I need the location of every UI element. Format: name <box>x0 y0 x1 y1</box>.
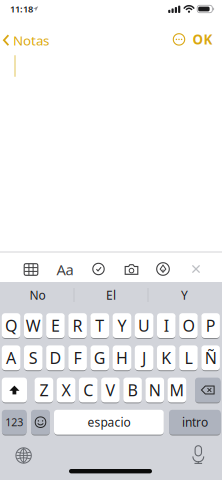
button[interactable]: Ocultar teclado <box>189 262 203 276</box>
staticText: P <box>206 315 216 336</box>
staticText: intro <box>182 414 208 430</box>
button[interactable]: U <box>135 313 153 338</box>
staticText: OK <box>192 30 212 48</box>
button[interactable]: R <box>68 313 87 338</box>
staticText: F <box>74 347 82 368</box>
staticText: S <box>29 347 38 368</box>
staticText: X <box>62 379 71 401</box>
button[interactable]: OK <box>192 32 212 46</box>
staticText: Notas <box>13 31 49 49</box>
staticText: Y <box>117 315 126 336</box>
button[interactable]: Y <box>148 284 220 306</box>
staticText: Z <box>39 379 48 401</box>
button[interactable]: M <box>168 377 186 403</box>
staticText: R <box>73 315 83 336</box>
staticText: I <box>164 315 169 336</box>
button[interactable]: V <box>101 377 120 403</box>
staticText: V <box>105 379 115 401</box>
button[interactable]: W <box>24 313 43 338</box>
staticText: Q <box>5 315 17 336</box>
button[interactable]: D <box>46 345 65 371</box>
staticText: U <box>138 315 150 336</box>
button[interactable]: Mayúsculas <box>2 377 27 403</box>
button[interactable]: Formato <box>56 261 74 277</box>
button[interactable]: espacio <box>54 409 164 435</box>
staticText: Aa <box>56 260 73 279</box>
button[interactable]: C <box>79 377 97 403</box>
button[interactable]: Ñ <box>201 345 220 371</box>
staticText: T <box>95 315 104 336</box>
staticText: W <box>26 315 41 336</box>
staticText: espacio <box>87 414 130 430</box>
staticText: N <box>149 379 161 401</box>
button[interactable]: J <box>135 345 153 371</box>
staticText: O <box>182 315 194 336</box>
button[interactable]: Más opciones <box>172 33 185 46</box>
button[interactable]: Siguiente teclado <box>14 445 34 465</box>
button[interactable]: X <box>57 377 75 403</box>
staticText: E <box>51 315 60 336</box>
button[interactable]: N <box>145 377 164 403</box>
button[interactable]: Emoji <box>31 409 50 435</box>
staticText: A <box>6 347 16 368</box>
button[interactable]: 123 <box>2 409 27 435</box>
button[interactable]: intro <box>169 409 221 435</box>
button[interactable]: Marcación <box>155 261 171 277</box>
button[interactable]: T <box>90 313 109 338</box>
staticText: Y <box>181 287 188 303</box>
button[interactable]: L <box>179 345 198 371</box>
staticText: No <box>29 287 45 303</box>
button[interactable]: Tabla <box>22 261 40 277</box>
button[interactable]: H <box>113 345 131 371</box>
button[interactable]: G <box>90 345 109 371</box>
button[interactable]: B <box>123 377 142 403</box>
button[interactable]: A <box>2 345 20 371</box>
staticText: K <box>161 347 171 368</box>
staticText: M <box>169 379 184 401</box>
staticText: G <box>94 347 106 368</box>
staticText: H <box>116 347 128 368</box>
button[interactable]: F <box>68 345 87 371</box>
button[interactable]: El <box>75 284 147 306</box>
button[interactable]: Cámara <box>122 261 140 277</box>
button[interactable]: Z <box>35 377 53 403</box>
button[interactable]: Dictar <box>189 445 207 465</box>
button[interactable]: S <box>24 345 43 371</box>
button[interactable]: P <box>201 313 220 338</box>
button[interactable]: K <box>157 345 176 371</box>
button[interactable]: Q <box>2 313 20 338</box>
staticText: 123 <box>5 415 23 429</box>
button[interactable]: Lista de verificación <box>90 261 106 277</box>
staticText: Ñ <box>205 347 217 368</box>
button[interactable]: I <box>157 313 176 338</box>
staticText: L <box>184 347 192 368</box>
staticText: C <box>83 379 93 401</box>
button[interactable]: Borrar <box>195 377 221 403</box>
button[interactable]: No <box>1 284 73 306</box>
staticText: B <box>128 379 138 401</box>
staticText: 11:18 <box>10 3 33 15</box>
staticText: El <box>106 287 116 303</box>
staticText: D <box>49 347 61 368</box>
button[interactable]: Notas <box>3 32 49 48</box>
button[interactable]: Y <box>113 313 131 338</box>
button[interactable]: E <box>46 313 65 338</box>
staticText: J <box>142 347 146 368</box>
button[interactable]: O <box>179 313 198 338</box>
